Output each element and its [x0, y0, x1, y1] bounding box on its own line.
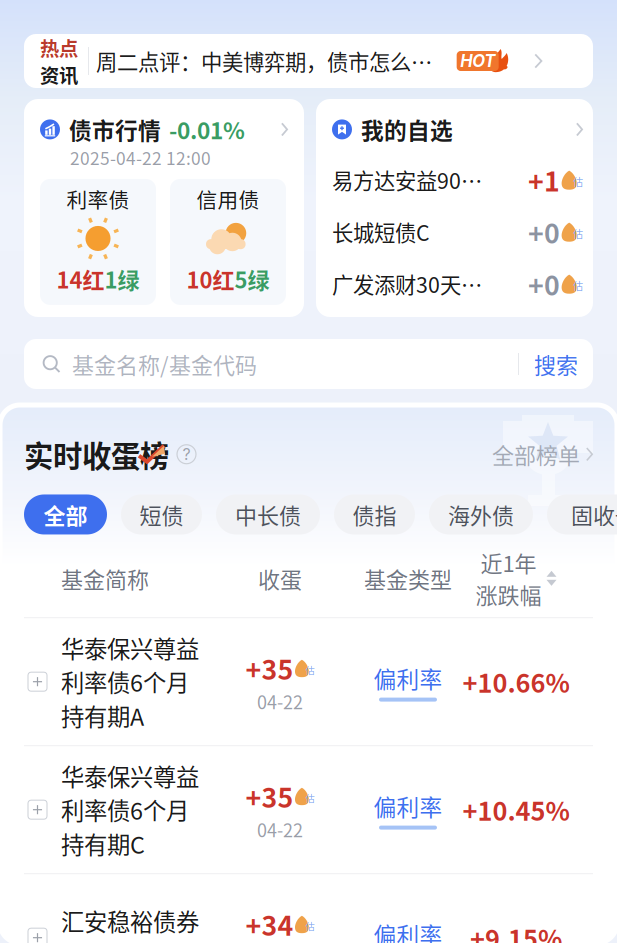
button[interactable]: 汇安稳裕债券A — [0, 874, 617, 943]
staticText: +0 — [528, 212, 560, 251]
staticText: 华泰保兴尊益利率债6个月持有期C — [61, 759, 199, 860]
staticText: 1绿 — [104, 263, 139, 295]
staticText: 偏利率 — [373, 662, 442, 695]
staticText: 14红 — [56, 263, 104, 295]
button[interactable]: 海外债 — [429, 494, 533, 534]
staticText: +35 — [245, 777, 293, 815]
staticText: 利率债 — [66, 184, 129, 214]
staticText: -0.01% — [169, 113, 245, 146]
staticText: 搜索 — [534, 348, 578, 380]
staticText: 周二点评：中美博弈期，债市怎么… — [96, 46, 432, 76]
staticText: 估 — [573, 278, 583, 293]
button[interactable]: 全部 — [24, 494, 107, 534]
staticText: 实时收蛋榜 — [24, 433, 169, 475]
staticText: 广发添财30天… — [332, 268, 482, 299]
button[interactable]: 我的自选 — [316, 99, 593, 317]
staticText: +10.45% — [462, 791, 569, 828]
staticText: ? — [182, 445, 190, 464]
staticText: 海外债 — [448, 498, 514, 530]
staticText: 04-22 — [257, 816, 303, 843]
staticText: 短债 — [139, 498, 183, 530]
staticText: 偏利率 — [373, 918, 442, 943]
staticText: 热点 — [40, 33, 78, 61]
staticText: 固收+ — [571, 498, 617, 530]
staticText: 偏利率 — [373, 790, 442, 823]
button[interactable]: 短债 — [121, 494, 202, 534]
staticText: 收蛋 — [258, 562, 302, 594]
staticText: 估 — [305, 919, 314, 933]
staticText: 资讯 — [40, 60, 78, 88]
staticText: 5绿 — [234, 263, 269, 295]
staticText: +9.15% — [470, 919, 562, 943]
button[interactable]: 固收+ — [547, 494, 617, 534]
button[interactable]: 中长债 — [216, 494, 320, 534]
staticText: 估 — [573, 174, 583, 189]
staticText: 华泰保兴尊益利率债6个月持有期A — [61, 631, 199, 732]
staticText: +0 — [528, 264, 560, 303]
staticText: 债市行情 — [69, 113, 161, 146]
staticText: 2025-04-22 12:00 — [70, 145, 211, 170]
staticText: 长城短债C — [332, 216, 430, 247]
staticText: 中长债 — [235, 498, 301, 530]
staticText: 估 — [573, 226, 583, 241]
button[interactable]: 热点 — [24, 34, 593, 88]
button[interactable]: 债指 — [334, 494, 415, 534]
staticText: 我的自选 — [361, 113, 453, 146]
staticText: 04-22 — [257, 688, 303, 715]
staticText: +34 — [245, 905, 293, 943]
staticText: 近1年 — [480, 546, 536, 578]
staticText: 债指 — [352, 498, 396, 530]
staticText: 汇安稳裕债券A — [61, 904, 199, 943]
staticText: 估 — [305, 663, 314, 677]
staticText: 涨跌幅 — [475, 578, 541, 610]
staticText: +10.66% — [462, 663, 569, 700]
staticText: 全部榜单 — [492, 438, 580, 470]
staticText: +35 — [245, 649, 293, 687]
button[interactable]: 债市行情 — [24, 99, 304, 317]
staticText: 基金名称/基金代码 — [72, 348, 257, 380]
staticText: 易方达安益90… — [332, 164, 482, 195]
button[interactable]: 全部榜单 — [492, 438, 593, 470]
staticText: 10红 — [186, 263, 234, 295]
button[interactable]: 华泰保兴尊益利率债6个月持有期A — [0, 618, 617, 745]
staticText: +1 — [528, 160, 560, 199]
staticText: HOT — [460, 51, 495, 71]
staticText: 基金简称 — [61, 562, 149, 594]
staticText: 估 — [305, 791, 314, 805]
button[interactable]: 华泰保兴尊益利率债6个月持有期C — [0, 746, 617, 873]
button[interactable]: 搜索 — [519, 348, 593, 380]
staticText: 信用债 — [196, 184, 259, 214]
staticText: 全部 — [43, 498, 87, 530]
staticText: 基金类型 — [364, 562, 452, 594]
